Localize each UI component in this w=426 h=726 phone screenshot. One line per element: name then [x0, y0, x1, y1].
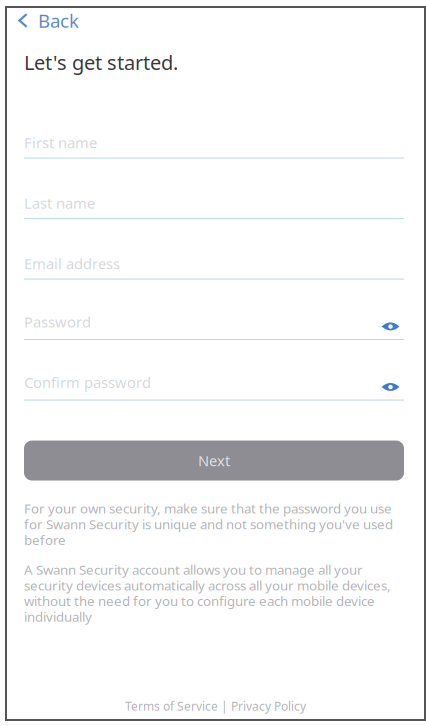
button[interactable]: Back: [7, 8, 89, 33]
staticText: Terms of Service | Privacy Policy: [125, 698, 306, 714]
button[interactable]: Terms of Service | Privacy Policy: [7, 693, 424, 719]
button[interactable]: Next: [24, 441, 404, 481]
staticText: Last name: [24, 193, 95, 213]
staticText: For your own security, make sure that th…: [24, 500, 393, 549]
button[interactable]: Show Password: [377, 312, 404, 336]
button[interactable]: Show Confirm password: [377, 373, 404, 397]
staticText: Back: [38, 8, 79, 33]
staticText: Let's get started.: [24, 49, 178, 76]
staticText: Confirm password: [24, 373, 151, 392]
staticText: Next: [198, 451, 230, 470]
staticText: First name: [24, 133, 97, 152]
staticText: Email address: [24, 254, 120, 273]
staticText: A Swann Security account allows you to m…: [24, 561, 391, 625]
staticText: Password: [24, 312, 91, 332]
